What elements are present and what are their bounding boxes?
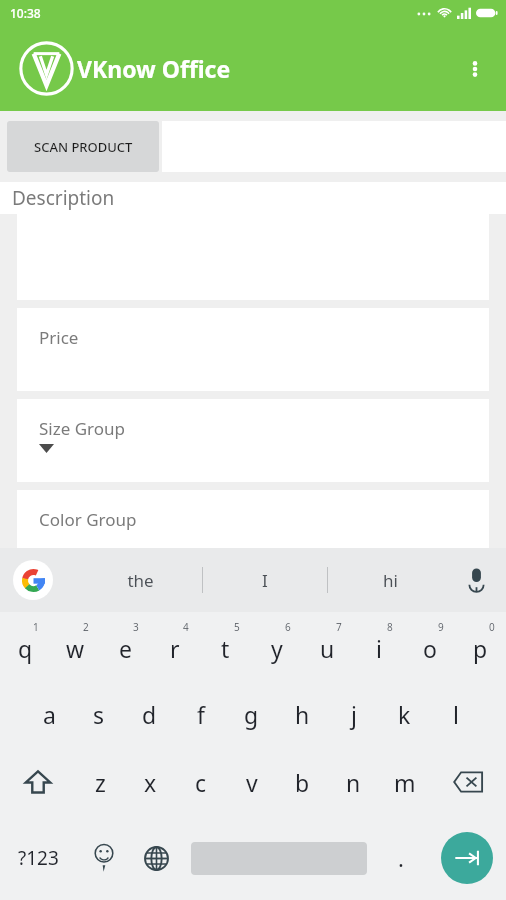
staticText: i: [376, 633, 382, 664]
button[interactable]: More options: [452, 46, 498, 92]
button[interactable]: w: [50, 612, 100, 680]
button[interactable]: i: [353, 612, 404, 680]
staticText: 2: [83, 620, 89, 634]
button[interactable]: u: [302, 612, 353, 680]
button[interactable]: e: [100, 612, 150, 680]
button[interactable]: the: [78, 548, 202, 612]
staticText: c: [195, 767, 207, 798]
staticText: 9: [438, 620, 444, 634]
button[interactable]: Price: [17, 308, 489, 391]
staticText: u: [320, 633, 335, 664]
staticText: SCAN PRODUCT: [34, 138, 133, 156]
staticText: Description: [12, 185, 115, 211]
staticText: 1: [33, 620, 39, 634]
staticText: j: [351, 699, 357, 730]
button[interactable]: a: [24, 680, 74, 748]
staticText: 5: [234, 620, 240, 634]
button[interactable]: Enter: [427, 816, 506, 900]
staticText: Price: [39, 326, 79, 349]
staticText: t: [221, 633, 230, 664]
button[interactable]: m: [379, 748, 430, 816]
staticText: I: [262, 569, 268, 592]
staticText: 4: [183, 620, 189, 634]
staticText: z: [95, 767, 106, 798]
staticText: 8: [387, 620, 393, 634]
staticText: r: [170, 633, 180, 664]
button[interactable]: l: [430, 680, 481, 748]
staticText: d: [142, 699, 157, 730]
staticText: o: [423, 633, 437, 664]
staticText: v: [246, 767, 258, 798]
button[interactable]: n: [328, 748, 379, 816]
button[interactable]: r: [150, 612, 200, 680]
staticText: 0: [489, 620, 495, 634]
button[interactable]: Size Group: [17, 399, 489, 482]
staticText: s: [93, 699, 105, 730]
staticText: VKnow Office: [77, 53, 231, 84]
staticText: e: [119, 633, 132, 664]
staticText: g: [244, 699, 259, 730]
button[interactable]: b: [277, 748, 328, 816]
button[interactable]: o: [404, 612, 455, 680]
button[interactable]: x: [125, 748, 175, 816]
staticText: l: [453, 699, 459, 730]
staticText: a: [43, 699, 56, 730]
staticText: Size Group: [39, 417, 126, 440]
staticText: x: [144, 767, 157, 798]
button[interactable]: Shift: [0, 748, 75, 816]
button[interactable]: hi: [328, 548, 452, 612]
button[interactable]: z: [75, 748, 125, 816]
staticText: w: [66, 633, 85, 664]
button[interactable]: s: [74, 680, 124, 748]
button[interactable]: g: [226, 680, 277, 748]
button[interactable]: Backspace: [430, 748, 506, 816]
button[interactable]: ?123: [0, 816, 77, 900]
button[interactable]: Voice input: [456, 560, 496, 600]
button[interactable]: Color Group: [17, 490, 489, 573]
button[interactable]: I: [203, 548, 327, 612]
button[interactable]: Change language: [130, 816, 183, 900]
staticText: p: [473, 633, 488, 664]
staticText: n: [346, 767, 361, 798]
staticText: y: [271, 633, 283, 664]
button[interactable]: SCAN PRODUCT: [7, 121, 159, 172]
button[interactable]: f: [175, 680, 226, 748]
staticText: .: [398, 843, 404, 873]
staticText: Color Group: [39, 508, 137, 531]
button[interactable]: Description: [0, 182, 506, 214]
staticText: hi: [383, 569, 398, 592]
staticText: 7: [336, 620, 342, 634]
button[interactable]: v: [226, 748, 277, 816]
button[interactable]: d: [124, 680, 175, 748]
button[interactable]: h: [277, 680, 328, 748]
staticText: h: [295, 699, 310, 730]
staticText: 6: [285, 620, 291, 634]
staticText: k: [398, 699, 411, 730]
button[interactable]: .: [374, 816, 427, 900]
staticText: f: [197, 699, 205, 730]
button[interactable]: Google: [13, 560, 53, 600]
staticText: q: [18, 633, 33, 664]
staticText: b: [295, 767, 310, 798]
staticText: ?123: [18, 845, 59, 871]
button[interactable]: [183, 816, 374, 900]
button[interactable]: k: [379, 680, 430, 748]
staticText: m: [394, 767, 416, 798]
staticText: the: [127, 569, 154, 592]
button[interactable]: j: [328, 680, 379, 748]
button[interactable]: q: [0, 612, 50, 680]
button[interactable]: p: [455, 612, 506, 680]
button[interactable]: Emoji: [77, 816, 130, 900]
button[interactable]: c: [175, 748, 226, 816]
button[interactable]: y: [251, 612, 302, 680]
staticText: 3: [133, 620, 139, 634]
staticText: 10:38: [10, 5, 41, 21]
button[interactable]: t: [200, 612, 251, 680]
